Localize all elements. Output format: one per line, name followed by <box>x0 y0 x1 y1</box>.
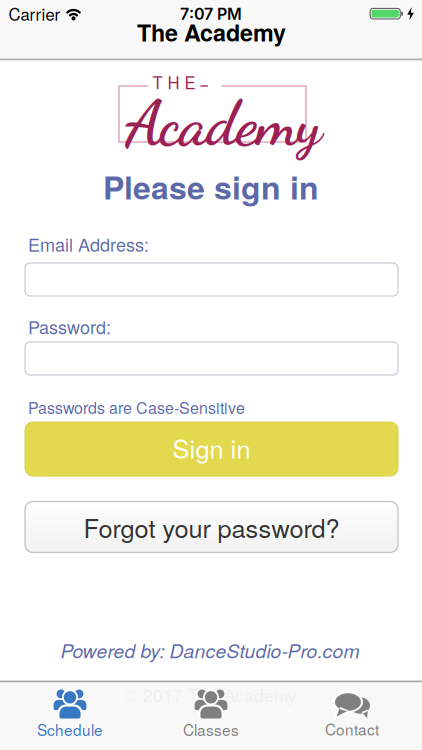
staticText: Forgot your password? <box>83 509 339 545</box>
staticText: The Academy <box>137 15 286 49</box>
staticText: Passwords are Case-Sensitive <box>28 395 245 418</box>
staticText: Schedule <box>37 718 103 740</box>
staticText: Please sign in <box>103 164 319 209</box>
button[interactable]: Password <box>25 342 398 375</box>
staticText: 7:07 PM <box>180 4 242 24</box>
staticText: Sign in <box>172 429 250 466</box>
staticText: Carrier <box>8 2 60 25</box>
button[interactable]: Contact <box>325 693 379 740</box>
staticText: Academy <box>125 86 322 161</box>
button[interactable]: Forgot your password? <box>25 501 398 552</box>
staticText: © 2017 The Academy <box>125 682 297 707</box>
staticText: Powered by: DanceStudio-Pro.com <box>60 636 359 664</box>
staticText: THE <box>152 70 195 94</box>
staticText: Password: <box>28 314 111 339</box>
button[interactable]: Schedule <box>37 688 103 740</box>
staticText: Email Address: <box>28 231 149 257</box>
staticText: Contact <box>325 718 379 740</box>
staticText: Classes <box>183 718 239 740</box>
button[interactable]: Email Address <box>25 263 398 296</box>
button[interactable]: Sign in <box>25 422 398 476</box>
button[interactable]: Classes <box>183 688 239 740</box>
button[interactable]: Powered by: DanceStudio-Pro.com <box>60 636 359 664</box>
